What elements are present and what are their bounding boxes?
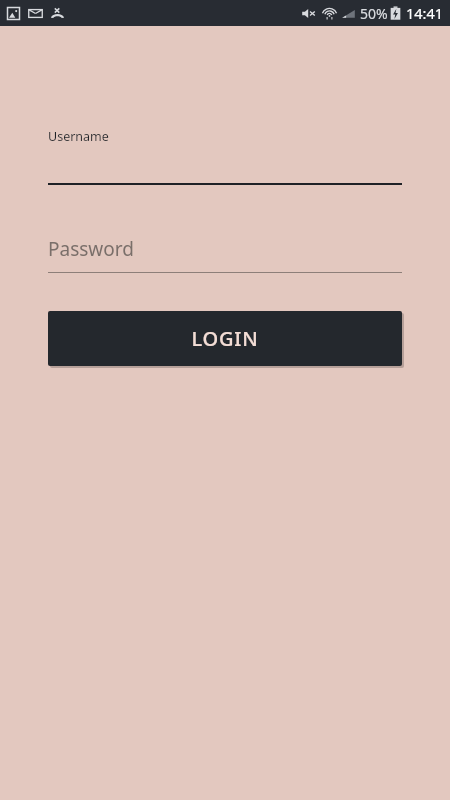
staticText: LOGIN [191, 325, 259, 352]
staticText: Username [48, 128, 109, 145]
button[interactable]: Password [48, 228, 402, 273]
staticText: Password [48, 236, 134, 262]
button[interactable]: LOGIN [48, 311, 402, 366]
staticText: 50% [360, 4, 388, 23]
staticText: 14:41 [406, 3, 444, 23]
button[interactable]: Username [48, 118, 402, 190]
